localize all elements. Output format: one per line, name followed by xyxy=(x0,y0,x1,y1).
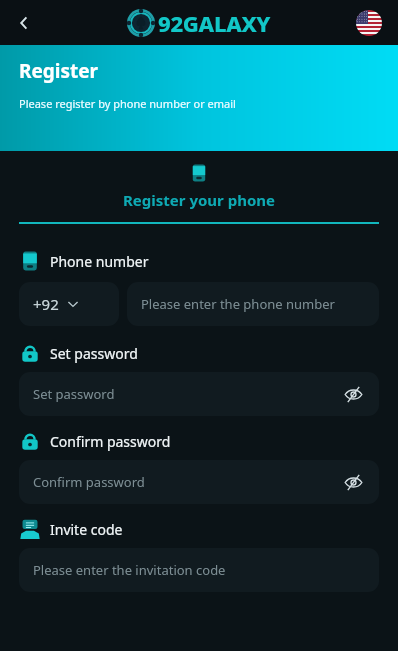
staticText: Please enter the phone number xyxy=(141,295,335,313)
staticText: +92 xyxy=(33,294,59,314)
staticText: Set password xyxy=(50,344,138,363)
staticText: 92GALAXY xyxy=(158,8,271,38)
button[interactable]: Back xyxy=(4,3,44,43)
button[interactable]: +92 xyxy=(19,282,119,326)
button[interactable]: Language xyxy=(356,10,382,36)
button[interactable]: Show password xyxy=(341,382,365,406)
button[interactable]: Please enter the phone number xyxy=(127,282,379,326)
button[interactable]: Confirm password xyxy=(19,460,379,504)
staticText: Confirm password xyxy=(33,473,145,491)
button[interactable]: Show password xyxy=(341,470,365,494)
staticText: Please register by phone number or email xyxy=(19,96,236,111)
staticText: Register xyxy=(19,58,99,84)
staticText: Invite code xyxy=(50,520,123,539)
staticText: Register your phone xyxy=(123,190,275,210)
staticText: Phone number xyxy=(50,252,149,271)
button[interactable]: Set password xyxy=(19,372,379,416)
button[interactable]: Please enter the invitation code xyxy=(19,548,379,592)
staticText: Set password xyxy=(33,385,115,403)
staticText: Confirm password xyxy=(50,432,171,451)
staticText: Please enter the invitation code xyxy=(33,561,226,579)
button[interactable]: Register your phone xyxy=(0,163,398,224)
